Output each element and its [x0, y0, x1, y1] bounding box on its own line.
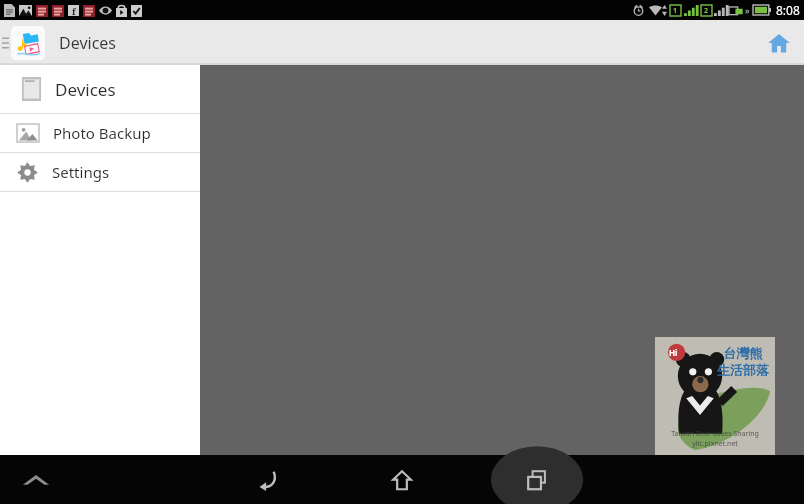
button[interactable]: Devices	[0, 65, 200, 113]
staticText: Taiwan Bear Loves Sharing ylic.pixnet.ne…	[671, 429, 759, 449]
button[interactable]: Home	[760, 24, 798, 62]
staticText: f	[72, 5, 76, 16]
staticText: Devices	[55, 78, 116, 101]
button[interactable]: Recent apps	[489, 455, 585, 504]
staticText: Photo Backup	[53, 123, 151, 143]
button[interactable]: Home	[377, 455, 427, 504]
staticText: 2	[704, 6, 709, 16]
staticText: 8:08	[776, 2, 800, 18]
button[interactable]: Settings	[0, 153, 200, 191]
staticText: Devices	[59, 32, 117, 54]
button[interactable]: Devices	[11, 26, 117, 60]
staticText: 1	[673, 6, 678, 16]
staticText: 台灣熊 生活部落	[717, 345, 769, 379]
staticText: Settings	[52, 162, 110, 182]
staticText: Hi	[669, 347, 678, 358]
button[interactable]: Menu	[14, 458, 58, 502]
staticText: »	[745, 4, 750, 16]
button[interactable]: Photo Backup	[0, 114, 200, 152]
button[interactable]: Back	[242, 455, 292, 504]
